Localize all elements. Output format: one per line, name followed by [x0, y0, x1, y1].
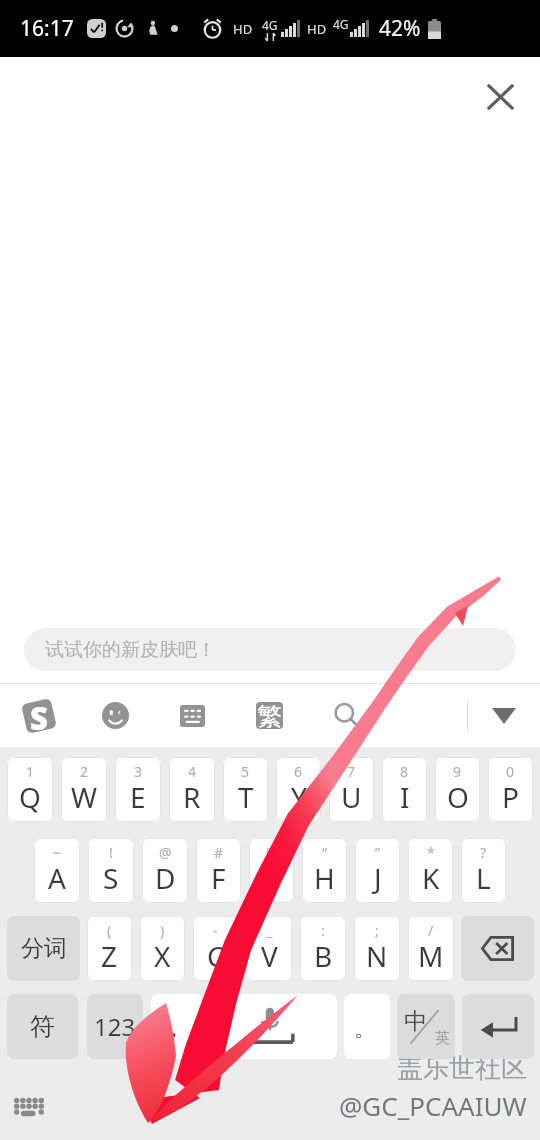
staticText: /	[428, 921, 434, 940]
staticText: ，	[163, 1015, 185, 1043]
button[interactable]: 1	[7, 757, 53, 822]
staticText: 2	[80, 762, 89, 781]
button[interactable]: ;	[354, 916, 400, 981]
button[interactable]: Close	[478, 74, 523, 119]
staticText: @	[159, 843, 172, 862]
button[interactable]: Hide keyboard	[468, 684, 540, 747]
staticText: F	[211, 859, 226, 897]
button[interactable]: “	[302, 838, 347, 903]
staticText: 3	[134, 762, 143, 781]
button[interactable]: *	[408, 838, 453, 903]
staticText: 繁	[257, 702, 282, 728]
staticText: A	[48, 859, 66, 897]
button[interactable]: (	[87, 916, 132, 981]
button[interactable]: 123	[87, 994, 143, 1059]
staticText: 16:17	[20, 14, 74, 43]
button[interactable]: Search	[308, 684, 385, 747]
staticText: )	[160, 921, 165, 940]
button[interactable]: @	[142, 838, 188, 903]
staticText: 0	[506, 762, 515, 781]
button[interactable]: ~	[34, 838, 80, 903]
staticText: P	[502, 778, 519, 816]
staticText: 英	[435, 1029, 450, 1048]
staticText: J	[374, 859, 382, 897]
staticText: S	[30, 697, 48, 733]
staticText: (	[107, 921, 112, 940]
button[interactable]: 0	[488, 757, 533, 822]
staticText: O	[447, 778, 469, 816]
button[interactable]: Keyboard settings	[6, 1090, 52, 1122]
button[interactable]: 9	[435, 757, 480, 822]
button[interactable]: 7	[329, 757, 374, 822]
staticText: #	[214, 843, 224, 862]
button[interactable]: Chinese English toggle	[397, 994, 455, 1059]
staticText: D	[155, 859, 176, 897]
staticText: HD	[233, 20, 253, 38]
staticText: 分词	[21, 934, 67, 963]
button[interactable]: Emoji	[77, 684, 154, 747]
staticText: 试试你的新皮肤吧！	[45, 638, 216, 662]
staticText: Q	[19, 778, 41, 816]
staticText: ”	[375, 843, 381, 862]
button[interactable]: #	[196, 838, 241, 903]
staticText: Y	[291, 778, 307, 816]
button[interactable]: Keyboard layout	[154, 684, 231, 747]
button[interactable]: -	[193, 916, 238, 981]
staticText: 5	[241, 762, 250, 781]
button[interactable]: 试试你的新皮肤吧！	[24, 628, 516, 671]
button[interactable]: Traditional Chinese	[231, 684, 308, 747]
button[interactable]: _	[246, 916, 292, 981]
button[interactable]: Backspace	[461, 916, 534, 981]
button[interactable]: 8	[382, 757, 427, 822]
button[interactable]: Space	[205, 994, 337, 1059]
staticText: 6	[294, 762, 303, 781]
staticText: C	[207, 937, 225, 975]
staticText: K	[422, 859, 440, 897]
button[interactable]: 2	[61, 757, 107, 822]
button[interactable]: 。	[344, 994, 390, 1059]
staticText: 中	[404, 1007, 427, 1036]
button[interactable]: 3	[115, 757, 161, 822]
button[interactable]: !	[88, 838, 134, 903]
button[interactable]: 5	[223, 757, 268, 822]
staticText: S	[103, 859, 119, 897]
staticText: ~	[53, 843, 62, 862]
button[interactable]: 分词	[7, 916, 80, 981]
button[interactable]: /	[408, 916, 454, 981]
button[interactable]: Sogou	[0, 684, 77, 747]
staticText: *	[427, 843, 435, 862]
button[interactable]: 4	[169, 757, 215, 822]
staticText: X	[154, 937, 171, 975]
staticText: M	[418, 937, 444, 975]
staticText: ;	[375, 921, 379, 940]
staticText: T	[238, 778, 254, 816]
staticText: G	[261, 859, 282, 897]
button[interactable]: ”	[355, 838, 400, 903]
button[interactable]: 符	[7, 994, 78, 1059]
button[interactable]: Enter	[462, 994, 534, 1059]
staticText: !	[109, 843, 113, 862]
staticText: Z	[101, 937, 118, 975]
button[interactable]: 6	[276, 757, 321, 822]
staticText: _	[266, 921, 273, 940]
staticText: B	[314, 937, 333, 975]
staticText: 42%	[379, 14, 421, 43]
button[interactable]: )	[140, 916, 185, 981]
button[interactable]: :	[300, 916, 346, 981]
staticText: 1	[26, 762, 35, 781]
staticText: 8	[400, 762, 409, 781]
staticText: 符	[30, 1011, 55, 1042]
button[interactable]: ?	[461, 838, 506, 903]
staticText: R	[183, 778, 201, 816]
staticText: 123	[94, 1010, 136, 1043]
staticText: ?	[480, 843, 487, 862]
staticText: 4G	[262, 17, 278, 33]
button[interactable]: ，	[151, 994, 202, 1059]
staticText: “	[322, 843, 328, 862]
staticText: %	[266, 843, 278, 862]
staticText: L	[476, 859, 491, 897]
staticText: 4G	[333, 16, 349, 32]
staticText: 盖乐世社区	[397, 1052, 527, 1085]
staticText: 。	[354, 1015, 376, 1043]
button[interactable]: %	[249, 838, 294, 903]
